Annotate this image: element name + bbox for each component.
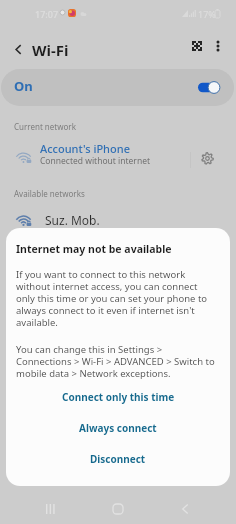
staticText: If you want to connect to this network w… xyxy=(16,268,218,329)
staticText: Current network xyxy=(14,121,76,132)
staticText: You can change this in Settings > Connec… xyxy=(16,343,218,380)
button[interactable]: Account's iPhone xyxy=(0,141,236,170)
staticText: Disconnect xyxy=(90,452,146,466)
staticText: Suz. Mob. xyxy=(45,212,100,228)
staticText: Connect only this time xyxy=(62,390,175,404)
button[interactable]: Suz. Mob. xyxy=(0,206,236,234)
button[interactable]: Home xyxy=(103,494,132,523)
staticText: Internet may not be available xyxy=(16,242,172,256)
staticText: Connected without internet xyxy=(40,155,150,167)
staticText: On xyxy=(14,77,33,95)
button[interactable]: Network settings xyxy=(196,147,219,170)
button[interactable]: Navigate up xyxy=(7,38,30,61)
button[interactable]: Always connect xyxy=(6,415,230,440)
staticText: 17% xyxy=(198,8,216,20)
button[interactable]: Scan QR code xyxy=(185,34,209,58)
staticText: Account's iPhone xyxy=(40,141,130,156)
staticText: 17:07 xyxy=(35,8,59,20)
button[interactable]: More options xyxy=(206,34,229,57)
button[interactable]: Disconnect xyxy=(6,446,230,471)
button[interactable]: Connect only this time xyxy=(6,384,230,409)
button[interactable]: On xyxy=(1,69,234,106)
staticText: Wi-Fi xyxy=(32,40,69,60)
staticText: Available networks xyxy=(14,188,85,199)
button[interactable]: Recents xyxy=(36,494,65,523)
staticText: Always connect xyxy=(79,421,157,435)
